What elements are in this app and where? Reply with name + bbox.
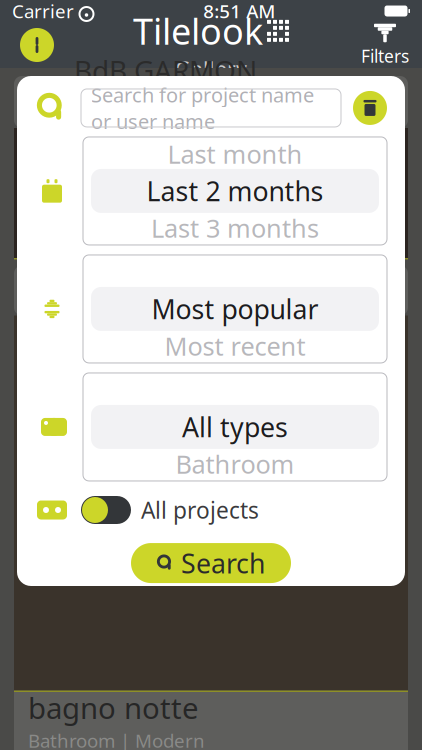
staticText: BdB GARMON MORELLA S.L. bbox=[74, 51, 257, 126]
staticText: Bathroom | Modern bbox=[28, 728, 205, 750]
staticText: Last 3 months bbox=[151, 211, 319, 245]
staticText: Search bbox=[181, 545, 265, 581]
staticText: Search for project name or user name bbox=[91, 81, 314, 134]
button[interactable]: Filters bbox=[354, 22, 416, 68]
staticText: bagno notte bbox=[28, 688, 199, 727]
button[interactable]: All projects bbox=[81, 495, 387, 525]
staticText: Morella, Spain bbox=[74, 128, 198, 153]
staticText: 8:51 AM bbox=[203, 0, 275, 23]
staticText: Most recent bbox=[164, 329, 305, 363]
staticText: Dario Ortiz bbox=[70, 260, 207, 296]
button[interactable]: Back bbox=[6, 22, 68, 68]
staticText: Most popular bbox=[151, 291, 318, 327]
staticText: Gallery bbox=[175, 55, 247, 83]
staticText: Barcelona, Spain bbox=[70, 298, 207, 321]
staticText: Last 2 months bbox=[146, 173, 323, 209]
staticText: All types bbox=[182, 409, 288, 445]
staticText: Filters bbox=[361, 44, 409, 67]
button[interactable]: Search bbox=[131, 543, 291, 583]
staticText: All projects bbox=[141, 495, 259, 525]
staticText: Last month bbox=[167, 137, 302, 171]
button[interactable]: Clear filters bbox=[353, 91, 387, 125]
staticText: Carrier bbox=[12, 0, 74, 23]
staticText: Bathroom bbox=[175, 447, 294, 481]
staticText: Tilelook bbox=[133, 7, 263, 55]
